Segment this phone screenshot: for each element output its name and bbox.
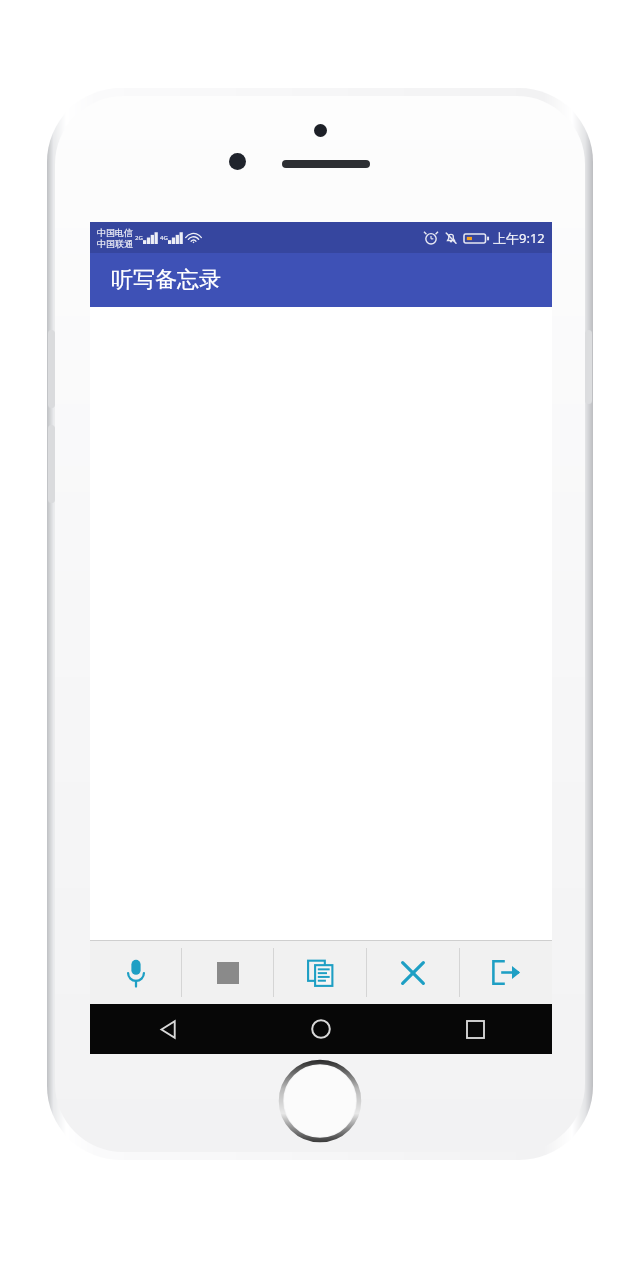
staticText: 2G <box>135 234 143 242</box>
staticText: 4G <box>160 234 168 242</box>
button[interactable]: Stop <box>182 941 273 1004</box>
button[interactable]: Copy <box>274 941 366 1004</box>
staticText: 中国联通 <box>97 238 133 249</box>
staticText: 听写备忘录 <box>111 266 221 294</box>
button[interactable]: Clear <box>367 941 459 1004</box>
button[interactable]: Record <box>90 941 181 1004</box>
button[interactable]: Exit <box>460 941 552 1004</box>
button[interactable]: Home <box>244 1004 398 1054</box>
button[interactable]: Back <box>90 1004 244 1054</box>
staticText: 上午9:12 <box>493 229 545 247</box>
button[interactable]: Recents <box>398 1004 552 1054</box>
staticText: 中国电信 <box>97 227 133 238</box>
